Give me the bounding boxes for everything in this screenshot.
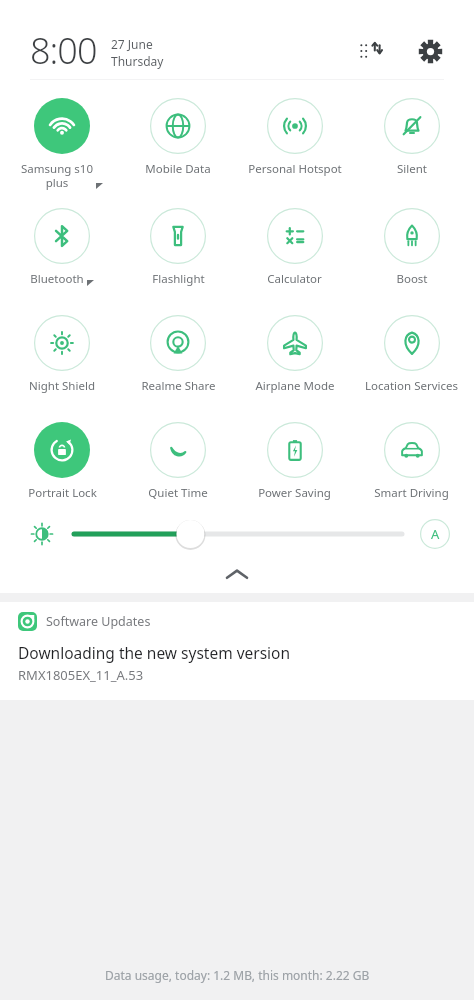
staticText: Night Shield — [29, 378, 95, 394]
staticText: Samsung s10 plus — [21, 161, 93, 190]
button[interactable]: Software Updates — [0, 602, 474, 700]
button[interactable]: Settings — [410, 31, 450, 71]
button[interactable]: Flashlight — [120, 206, 236, 287]
button[interactable]: Location Services — [353, 313, 470, 394]
button[interactable]: Samsung s10 plus — [4, 96, 120, 190]
button[interactable]: Silent — [353, 96, 470, 177]
button[interactable]: Brightness — [74, 517, 402, 551]
staticText: Bluetooth — [30, 271, 84, 287]
button[interactable]: Night Shield — [4, 313, 120, 394]
staticText: A — [431, 525, 440, 543]
staticText: Calculator — [267, 271, 322, 287]
staticText: 27 June — [111, 36, 153, 52]
staticText: Silent — [397, 161, 427, 177]
button[interactable]: Portrait Lock — [4, 420, 120, 501]
button[interactable]: Personal Hotspot — [236, 96, 353, 177]
staticText: Realme Share — [141, 378, 216, 394]
staticText: Boost — [396, 271, 428, 287]
button[interactable]: Bluetooth — [4, 206, 120, 287]
staticText: Downloading the new system version — [18, 642, 291, 663]
button[interactable]: Mobile Data — [120, 96, 236, 177]
staticText: Airplane Mode — [255, 378, 335, 394]
staticText: Thursday — [111, 53, 164, 69]
button[interactable]: Boost — [353, 206, 470, 287]
staticText: Power Saving — [258, 485, 331, 501]
staticText: Quiet Time — [148, 485, 208, 501]
staticText: Smart Driving — [374, 485, 449, 501]
staticText: 8:00 — [30, 26, 97, 75]
staticText: Software Updates — [46, 613, 151, 630]
staticText: Mobile Data — [145, 161, 211, 177]
button[interactable]: Airplane Mode — [236, 313, 353, 394]
button[interactable]: Smart Driving — [353, 420, 470, 501]
button[interactable]: Auto brightness — [420, 519, 450, 549]
staticText: Data usage, today: 1.2 MB, this month: 2… — [105, 967, 370, 983]
button[interactable]: Expand — [0, 561, 474, 587]
button[interactable]: Realme Share — [120, 313, 236, 394]
staticText: Flashlight — [152, 271, 205, 287]
staticText: Personal Hotspot — [248, 161, 342, 177]
button[interactable]: Quiet Time — [120, 420, 236, 501]
button[interactable]: Calculator — [236, 206, 353, 287]
staticText: Portrait Lock — [28, 485, 97, 501]
staticText: RMX1805EX_11_A.53 — [18, 666, 144, 684]
button[interactable]: Power Saving — [236, 420, 353, 501]
staticText: Location Services — [365, 378, 458, 394]
button[interactable]: Edit tiles — [350, 31, 390, 71]
